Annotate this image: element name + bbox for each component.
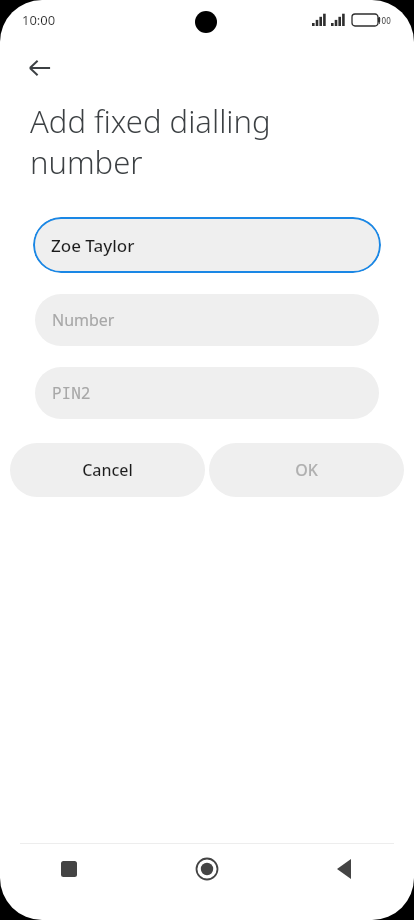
staticText: 10:00 (22, 11, 56, 29)
button[interactable]: Home (138, 844, 276, 894)
button[interactable]: OK (209, 443, 404, 497)
staticText: PIN2 (52, 382, 91, 404)
staticText: OK (295, 459, 318, 481)
staticText: Number (52, 309, 115, 331)
staticText: Cancel (82, 459, 133, 481)
button[interactable]: Back (276, 844, 414, 894)
button[interactable]: Zoe Taylor (33, 217, 381, 273)
button[interactable]: Number (35, 294, 379, 346)
button[interactable]: Back (18, 46, 62, 90)
staticText: Zoe Taylor (51, 234, 135, 257)
staticText: Add fixed dialling number (30, 100, 271, 183)
button[interactable]: Cancel (10, 443, 205, 497)
button[interactable]: PIN2 (35, 367, 379, 419)
staticText: 100 (377, 15, 391, 26)
button[interactable]: Recents (0, 844, 138, 894)
